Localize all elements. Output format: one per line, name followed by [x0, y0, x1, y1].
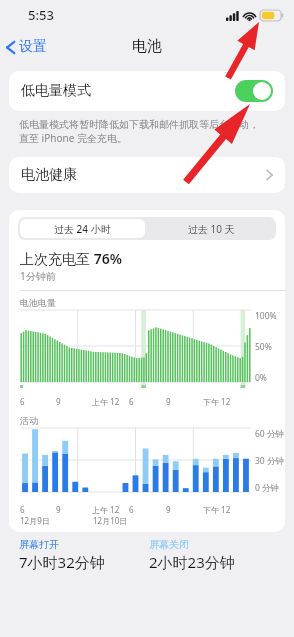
staticText: 0% — [255, 372, 267, 384]
staticText: 低电量模式 — [21, 82, 235, 100]
staticText: 下午 12 时 — [203, 396, 240, 407]
staticText: 6 — [20, 396, 25, 407]
button[interactable]: 过去 10 天 — [147, 217, 276, 240]
staticText: 100% — [255, 310, 277, 322]
staticText: 9 — [166, 504, 171, 515]
staticText: 9 — [166, 396, 171, 407]
staticText: 上次充电至 76% — [20, 249, 122, 268]
staticText: 活动 — [20, 415, 38, 426]
staticText: 屏幕打开 — [19, 538, 59, 551]
staticText: 电池 — [132, 37, 162, 56]
button[interactable]: 低电量模式 — [9, 71, 285, 111]
staticText: 12月10日 — [93, 515, 128, 526]
button[interactable]: 过去 24 小时 — [20, 219, 145, 238]
staticText: 50% — [255, 341, 272, 353]
button[interactable]: Low Power Mode toggle — [235, 80, 273, 102]
staticText: 下午 12 时 — [203, 504, 240, 515]
staticText: 0 分钟 — [255, 482, 280, 494]
staticText: 9 — [56, 396, 61, 407]
staticText: 上午 12 时 — [92, 504, 129, 515]
staticText: 设置 — [19, 38, 47, 56]
button[interactable]: 电池健康 — [9, 157, 285, 193]
button[interactable]: 设置 — [0, 34, 55, 60]
staticText: 过去 24 小时 — [54, 222, 111, 236]
staticText: 过去 10 天 — [188, 222, 235, 236]
staticText: 上午 12 时 — [92, 396, 129, 407]
staticText: 30 分钟 — [255, 455, 284, 467]
staticText: 2小时23分钟 — [149, 552, 235, 572]
staticText: 电池电量 — [20, 297, 56, 308]
staticText: 低电量模式将暂时降低如下载和邮件抓取等后台活动， — [19, 118, 259, 131]
staticText: 屏幕关闭 — [149, 538, 189, 551]
staticText: 直至 iPhone 完全充电。 — [19, 131, 127, 145]
staticText: 7小时32分钟 — [19, 552, 105, 572]
staticText: 1分钟前 — [20, 269, 56, 283]
staticText: 5:53 — [28, 6, 54, 24]
staticText: 60 分钟 — [255, 428, 284, 440]
staticText: 电池健康 — [21, 166, 266, 184]
staticText: 6 — [129, 504, 134, 515]
staticText: 12月9日 — [20, 515, 50, 526]
staticText: 6 — [129, 396, 134, 407]
staticText: 9 — [56, 504, 61, 515]
staticText: 6 — [20, 504, 25, 515]
